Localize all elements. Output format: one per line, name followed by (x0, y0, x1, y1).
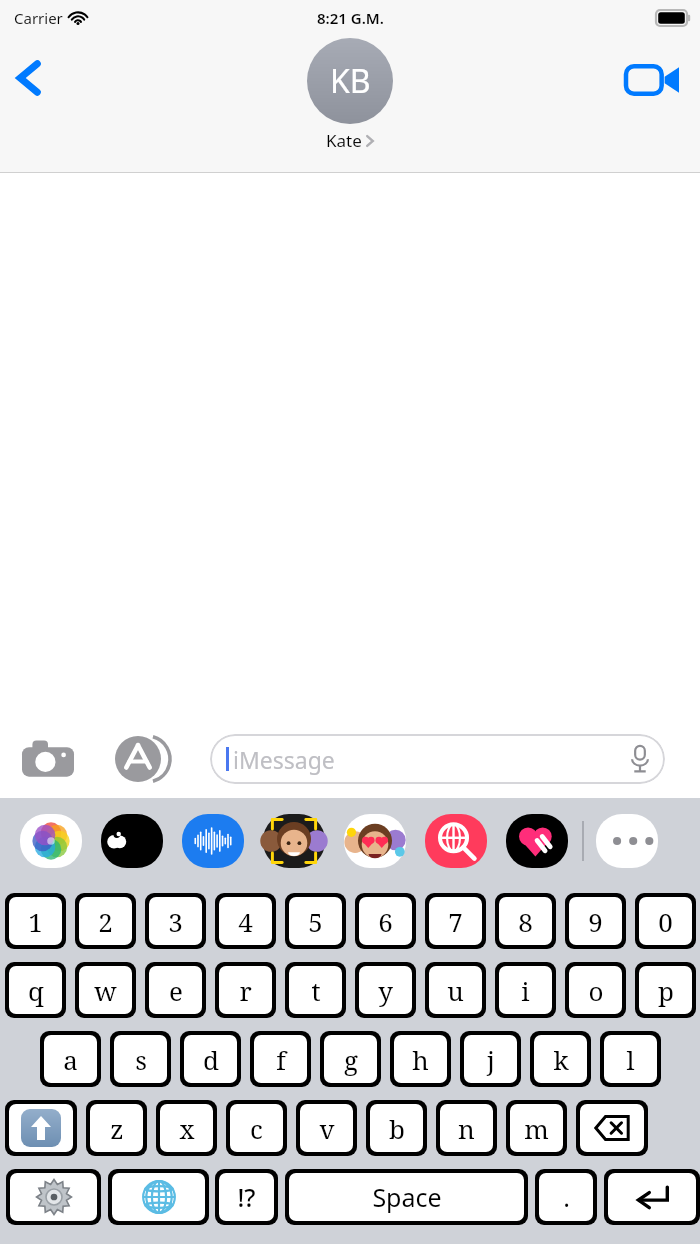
staticText: Carrier (14, 8, 63, 28)
button[interactable]: Image search (425, 814, 487, 868)
button[interactable]: i (495, 962, 556, 1018)
staticText: 6 (378, 904, 393, 939)
button[interactable]: 2 (75, 893, 136, 949)
staticText: 9 (588, 904, 603, 939)
button[interactable]: Audio message (182, 814, 244, 868)
button[interactable]: w (75, 962, 136, 1018)
button[interactable]: 3 (145, 893, 206, 949)
button[interactable]: c (226, 1100, 287, 1156)
button[interactable]: Photos (20, 814, 82, 868)
button[interactable]: o (565, 962, 626, 1018)
button[interactable]: k (530, 1031, 591, 1087)
button[interactable]: KB (307, 38, 393, 152)
button[interactable]: y (355, 962, 416, 1018)
staticText: v (319, 1111, 335, 1146)
button[interactable]: Memoji (263, 814, 325, 868)
staticText: 3 (168, 904, 183, 939)
button[interactable]: m (506, 1100, 567, 1156)
staticText: 7 (448, 904, 463, 939)
staticText: !? (237, 1180, 256, 1214)
button[interactable]: h (390, 1031, 451, 1087)
button[interactable]: Camera (22, 738, 74, 780)
staticText: Kate (326, 129, 362, 152)
button[interactable]: . (535, 1169, 597, 1225)
staticText: q (28, 973, 44, 1008)
staticText: m (524, 1111, 549, 1146)
staticText: n (458, 1111, 475, 1146)
staticText: 1 (28, 904, 43, 939)
button[interactable]: t (285, 962, 346, 1018)
button[interactable]: n (436, 1100, 497, 1156)
staticText: o (588, 973, 604, 1008)
button[interactable]: l (600, 1031, 661, 1087)
button[interactable]: Digital Touch (506, 814, 568, 868)
button[interactable]: 1 (5, 893, 66, 949)
staticText: k (553, 1042, 569, 1077)
button[interactable]: a (40, 1031, 101, 1087)
staticText: 5 (308, 904, 323, 939)
staticText: f (276, 1042, 286, 1077)
button[interactable]: iMessage (210, 734, 665, 784)
staticText: b (389, 1111, 405, 1146)
button[interactable]: u (425, 962, 486, 1018)
button[interactable]: 6 (355, 893, 416, 949)
button[interactable]: More apps (596, 814, 658, 868)
staticText: y (378, 973, 393, 1008)
button[interactable]: 5 (285, 893, 346, 949)
staticText: r (239, 973, 252, 1008)
button[interactable]: v (296, 1100, 357, 1156)
button[interactable]: s (110, 1031, 171, 1087)
staticText: iMessage (233, 744, 335, 775)
staticText: t (311, 973, 321, 1008)
button[interactable]: j (460, 1031, 521, 1087)
button[interactable]: d (180, 1031, 241, 1087)
staticText: 2 (98, 904, 113, 939)
staticText: u (447, 973, 464, 1008)
staticText: 8 (518, 904, 533, 939)
button[interactable]: 7 (425, 893, 486, 949)
button[interactable]: q (5, 962, 66, 1018)
button[interactable]: Back (16, 54, 64, 102)
staticText: s (135, 1042, 147, 1077)
button[interactable]: Settings (6, 1169, 101, 1225)
button[interactable]: b (366, 1100, 427, 1156)
button[interactable]: Memoji stickers (344, 814, 406, 868)
button[interactable]: !? (215, 1169, 278, 1225)
button[interactable]: f (250, 1031, 311, 1087)
button[interactable]: 4 (215, 893, 276, 949)
button[interactable]: Return (604, 1169, 700, 1225)
staticText: j (487, 1042, 495, 1077)
button[interactable]: Change keyboard (108, 1169, 209, 1225)
button[interactable]: Apple Cash (101, 814, 163, 868)
button[interactable]: App Store apps (114, 736, 172, 782)
staticText: e (169, 973, 183, 1008)
staticText: p (658, 973, 674, 1008)
button[interactable]: 9 (565, 893, 626, 949)
button[interactable]: FaceTime video call (626, 58, 680, 102)
button[interactable]: 8 (495, 893, 556, 949)
staticText: . (563, 1180, 570, 1214)
button[interactable]: e (145, 962, 206, 1018)
staticText: 8:21 G.M. (317, 8, 384, 28)
staticText: w (94, 973, 117, 1008)
staticText: x (179, 1111, 195, 1146)
button[interactable]: x (156, 1100, 217, 1156)
staticText: Space (372, 1180, 442, 1214)
staticText: l (626, 1042, 635, 1077)
button[interactable]: Backspace (576, 1100, 648, 1156)
staticText: a (63, 1042, 78, 1077)
staticText: c (250, 1111, 263, 1146)
button[interactable]: Space (285, 1169, 528, 1225)
button[interactable]: 0 (635, 893, 696, 949)
staticText: i (521, 973, 530, 1008)
staticText: KB (330, 59, 371, 103)
button[interactable]: r (215, 962, 276, 1018)
staticText: 0 (658, 904, 673, 939)
button[interactable]: g (320, 1031, 381, 1087)
button[interactable]: z (86, 1100, 147, 1156)
staticText: g (344, 1042, 358, 1077)
staticText: z (110, 1111, 124, 1146)
button[interactable]: Shift (5, 1100, 77, 1156)
button[interactable]: p (635, 962, 696, 1018)
staticText: 4 (238, 904, 253, 939)
